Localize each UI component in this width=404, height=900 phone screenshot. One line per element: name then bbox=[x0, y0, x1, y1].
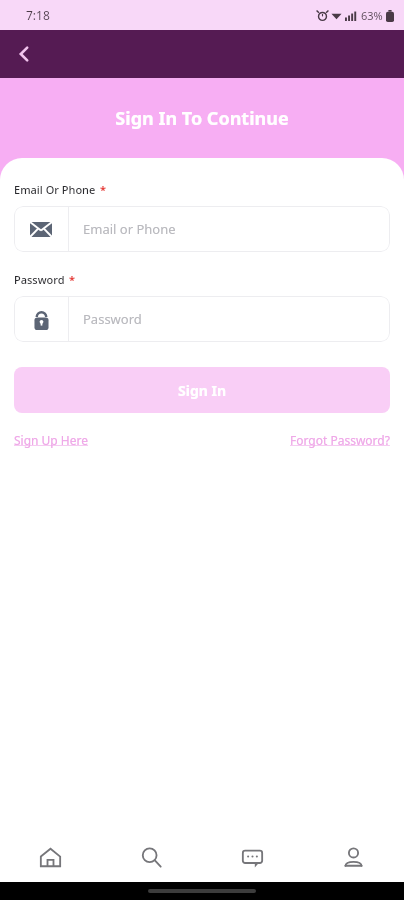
staticText: Sign In To Continue bbox=[115, 106, 289, 131]
button[interactable]: Email or phone field bbox=[14, 206, 390, 252]
button[interactable]: Sign Up Here bbox=[14, 432, 89, 448]
button[interactable]: Password field bbox=[14, 296, 390, 342]
staticText: Forgot Password? bbox=[290, 432, 390, 448]
staticText: Email or Phone bbox=[83, 220, 176, 238]
button[interactable]: Back bbox=[0, 30, 48, 78]
staticText: 63% bbox=[361, 8, 383, 23]
staticText: Sign In bbox=[178, 381, 227, 400]
staticText: * bbox=[69, 272, 75, 287]
staticText: Email Or Phone bbox=[14, 182, 96, 197]
staticText: Password bbox=[83, 310, 142, 328]
staticText: Sign Up Here bbox=[14, 432, 89, 448]
button[interactable]: Forgot Password? bbox=[290, 432, 390, 448]
button[interactable]: Profile bbox=[303, 833, 404, 882]
button[interactable]: Home bbox=[0, 833, 101, 882]
button[interactable]: Search bbox=[101, 833, 202, 882]
button[interactable]: Sign In bbox=[14, 367, 390, 413]
staticText: 7:18 bbox=[26, 7, 50, 23]
button[interactable]: Messages bbox=[202, 833, 303, 882]
staticText: * bbox=[100, 182, 106, 197]
staticText: Password bbox=[14, 272, 65, 287]
